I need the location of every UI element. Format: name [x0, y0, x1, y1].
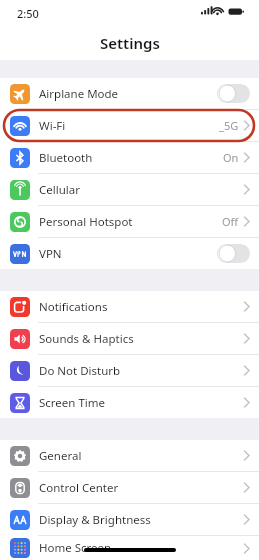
button[interactable]: Display & Brightness [0, 504, 259, 535]
staticText: General [39, 448, 82, 464]
staticText: Cellular [39, 182, 80, 198]
staticText: Notifications [39, 299, 108, 315]
staticText: Off [222, 214, 239, 229]
staticText: Airplane Mode [39, 86, 119, 102]
button[interactable]: Screen Time [0, 387, 259, 418]
staticText: Personal Hotspot [39, 214, 133, 230]
staticText: Control Center [39, 480, 119, 496]
button[interactable]: Toggle [217, 244, 250, 263]
button[interactable]: Cellular [0, 174, 259, 205]
staticText: Home Screen [39, 540, 112, 556]
staticText: On [223, 150, 239, 165]
staticText: Bluetooth [39, 150, 93, 166]
staticText: Screen Time [39, 395, 106, 411]
button[interactable]: Airplane Mode [0, 78, 259, 109]
button[interactable]: Bluetooth [0, 142, 259, 173]
button[interactable]: Toggle [217, 84, 250, 103]
button[interactable]: Personal Hotspot [0, 206, 259, 237]
button[interactable]: General [0, 440, 259, 471]
staticText: 2:50 [17, 6, 39, 21]
staticText: _5G [219, 118, 239, 133]
button[interactable]: VPN [0, 238, 259, 269]
staticText: Display & Brightness [39, 512, 151, 528]
staticText: Wi-Fi [39, 118, 66, 134]
button[interactable]: Notifications [0, 291, 259, 322]
button[interactable]: Control Center [0, 472, 259, 503]
staticText: Settings [100, 33, 160, 53]
button[interactable]: Home Screen [0, 536, 259, 560]
button[interactable]: Wi-Fi [0, 110, 259, 141]
staticText: Sounds & Haptics [39, 331, 134, 347]
button[interactable]: Sounds & Haptics [0, 323, 259, 354]
button[interactable]: Do Not Disturb [0, 355, 259, 386]
staticText: VPN [39, 246, 62, 262]
staticText: Do Not Disturb [39, 363, 121, 379]
